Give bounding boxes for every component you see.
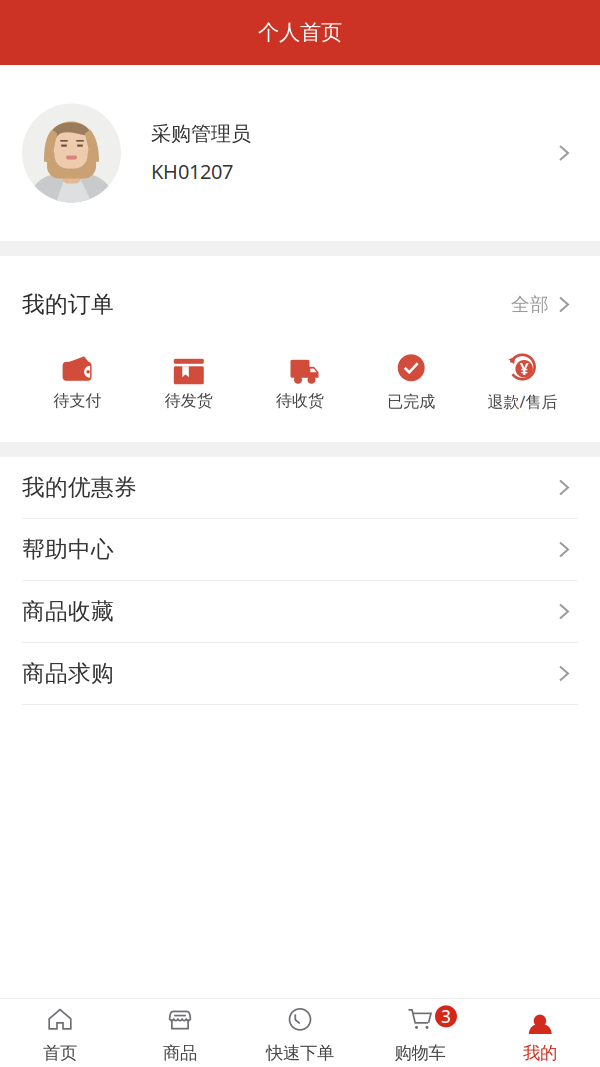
staticText: 快速下单 [266,1042,334,1064]
button[interactable]: 商品 [120,996,240,1067]
staticText: 待收货 [276,391,324,410]
staticText: 个人首页 [258,19,342,46]
button[interactable]: 商品求购 [0,643,600,704]
button[interactable]: 我的优惠券 [0,457,600,518]
button[interactable]: ¥ [467,353,578,412]
staticText: 已完成 [387,392,435,411]
button[interactable]: 商品收藏 [0,581,600,642]
staticText: 帮助中心 [22,536,114,563]
staticText: 采购管理员 [151,121,251,146]
button[interactable]: 3 [360,996,480,1067]
staticText: 首页 [43,1042,77,1064]
button[interactable]: 待发货 [133,355,244,410]
staticText: ¥ [520,358,529,379]
staticText: 3 [441,1005,451,1028]
staticText: 购物车 [394,1042,445,1064]
staticText: 我的优惠券 [22,474,137,501]
staticText: 我的 [523,1042,557,1064]
button[interactable]: 我的订单 [0,256,600,353]
staticText: 待支付 [54,391,102,410]
staticText: 商品收藏 [22,598,114,625]
staticText: 全部 [511,293,549,316]
staticText: 待发货 [165,391,213,410]
staticText: 商品 [163,1042,197,1064]
button[interactable]: 已完成 [356,354,467,411]
staticText: 商品求购 [22,660,114,687]
button[interactable]: 待支付 [22,355,133,410]
button[interactable]: 待收货 [244,355,356,410]
button[interactable]: 我的 [480,996,600,1067]
button[interactable]: 帮助中心 [0,519,600,580]
button[interactable]: 快速下单 [240,996,360,1067]
staticText: 我的订单 [22,291,114,318]
staticText: 退款/售后 [487,391,557,412]
button[interactable]: 首页 [0,996,120,1067]
button[interactable]: 采购管理员 [0,65,600,241]
staticText: KH01207 [151,158,233,185]
